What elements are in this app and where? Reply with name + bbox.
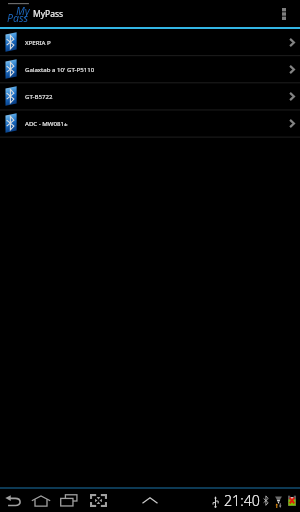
button[interactable]: GT-B5722 (0, 83, 300, 110)
button[interactable]: More options (267, 0, 300, 27)
button[interactable]: Galaxtab a 10' GT-P5110 (0, 56, 300, 83)
staticText: 21:40 (224, 491, 260, 510)
staticText: ADC - MW081± (25, 119, 68, 127)
button[interactable]: Show keyboard (136, 489, 164, 512)
staticText: XPERIA P (25, 38, 51, 46)
staticText: MyPass (33, 8, 64, 20)
button[interactable]: Home (27, 489, 55, 512)
button[interactable]: ADC - MW081± (0, 110, 300, 137)
button[interactable]: XPERIA P (0, 29, 300, 56)
staticText: GT-B5722 (25, 92, 53, 100)
staticText: Pass (7, 11, 28, 25)
button[interactable]: Recent apps (55, 489, 83, 512)
button[interactable]: Screenshot (84, 489, 112, 512)
button[interactable]: Back (0, 489, 27, 512)
staticText: Galaxtab a 10' GT-P5110 (25, 65, 95, 73)
staticText: My (16, 4, 30, 18)
